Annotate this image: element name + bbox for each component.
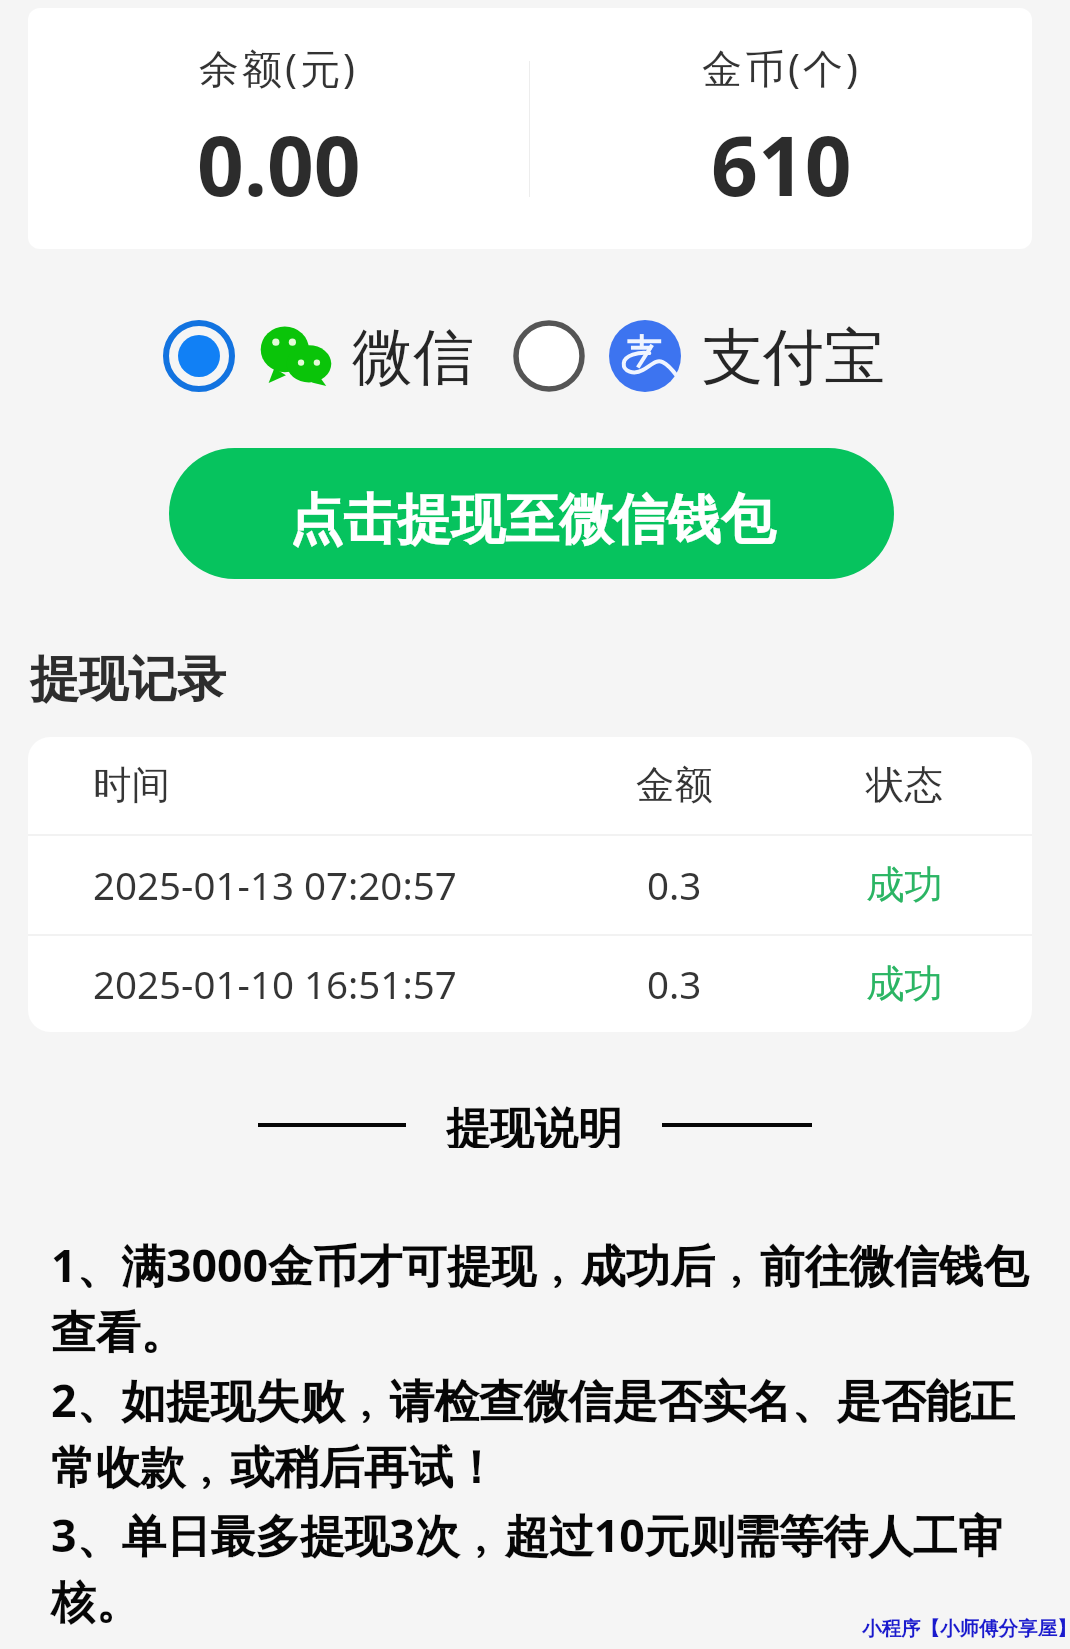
- staticText: 支付宝: [702, 319, 885, 392]
- other: Alipay wallet not selected: [513, 320, 585, 392]
- button[interactable]: Alipay wallet not selected: [513, 319, 885, 392]
- staticText: 点击提现至微信钱包: [289, 486, 775, 554]
- staticText: 0.3: [647, 958, 702, 1010]
- staticText: 0.00: [197, 108, 361, 220]
- other: WeChat: [260, 326, 332, 386]
- staticText: 2025-01-10 16:51:57: [93, 958, 457, 1010]
- button[interactable]: 2025-01-10 16:51:57: [28, 936, 1032, 1032]
- staticText: 0.3: [647, 859, 702, 911]
- button[interactable]: 时间: [28, 737, 1032, 834]
- staticText: 成功: [866, 960, 943, 1009]
- button[interactable]: WeChat wallet selected: [163, 319, 474, 392]
- staticText: 金币(个): [702, 40, 861, 95]
- staticText: 时间: [93, 761, 170, 810]
- staticText: 610: [711, 108, 852, 220]
- staticText: 余额(元): [199, 40, 358, 95]
- staticText: 提现记录: [30, 649, 226, 711]
- other: WeChat wallet selected: [163, 320, 235, 392]
- button[interactable]: 金币(个): [530, 8, 1032, 249]
- other: Alipay: [609, 320, 681, 392]
- button[interactable]: 余额(元): [28, 8, 529, 249]
- staticText: 小程序【小师傅分享屋】: [862, 1616, 1070, 1641]
- button[interactable]: 2025-01-13 07:20:57: [28, 836, 1032, 934]
- staticText: 微信: [352, 319, 474, 392]
- staticText: 提现说明: [446, 1102, 622, 1148]
- button[interactable]: 点击提现至微信钱包: [169, 448, 894, 579]
- staticText: 1、满3000金币才可提现﹐成功后﹐前往微信钱包查看。 2、如提现失败﹐请检查微…: [51, 1234, 1041, 1632]
- staticText: 成功: [866, 861, 943, 910]
- staticText: 2025-01-13 07:20:57: [93, 859, 457, 911]
- staticText: 状态: [866, 761, 943, 810]
- staticText: 金额: [636, 761, 713, 810]
